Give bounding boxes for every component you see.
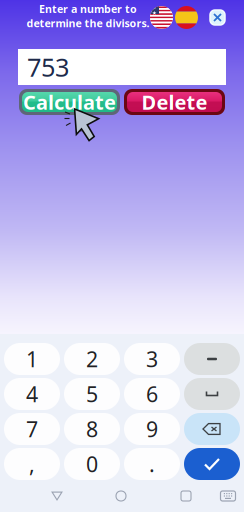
button[interactable]: Delete [124,89,225,115]
button[interactable]: Calculate [19,89,120,115]
staticText: 8 [86,415,98,443]
staticText: determine the divisors. [26,16,149,30]
button[interactable]: 6 [124,378,180,410]
staticText: 753 [27,50,69,84]
staticText: Enter a number to [39,2,137,16]
button[interactable]: Spanish [175,6,198,29]
button[interactable]: Home [107,480,135,512]
button[interactable]: 8 [64,413,120,445]
button[interactable]: Back [43,480,71,512]
button[interactable]: Close [210,10,225,25]
staticText: 3 [146,345,158,373]
button[interactable]: Backspace [184,413,240,445]
staticText: ★★ [152,4,157,16]
button[interactable]: . [124,448,180,480]
button[interactable]: English [150,6,173,29]
staticText: 4 [26,380,38,408]
staticText: Delete [141,89,207,115]
button[interactable]: 7 [4,413,60,445]
button[interactable]: 2 [64,343,120,375]
staticText: Calculate [23,89,116,115]
staticText: 2 [86,345,98,373]
button[interactable]: Recents [172,480,200,512]
button[interactable]: Enter [184,448,240,480]
button[interactable]: Minus [184,343,240,375]
button[interactable]: 4 [4,378,60,410]
staticText: 1 [26,345,38,373]
staticText: . [149,450,155,478]
staticText: 7 [26,415,38,443]
button[interactable]: Space [184,378,240,410]
staticText: 9 [146,415,158,443]
staticText: , [29,450,35,478]
button[interactable]: 5 [64,378,120,410]
button[interactable]: 3 [124,343,180,375]
button[interactable]: 0 [64,448,120,480]
button[interactable]: 1 [4,343,60,375]
button[interactable]: 9 [124,413,180,445]
button[interactable]: , [4,448,60,480]
staticText: 0 [86,450,98,478]
staticText: 6 [146,380,158,408]
button[interactable]: Keyboard [214,480,242,512]
staticText: 5 [86,380,98,408]
